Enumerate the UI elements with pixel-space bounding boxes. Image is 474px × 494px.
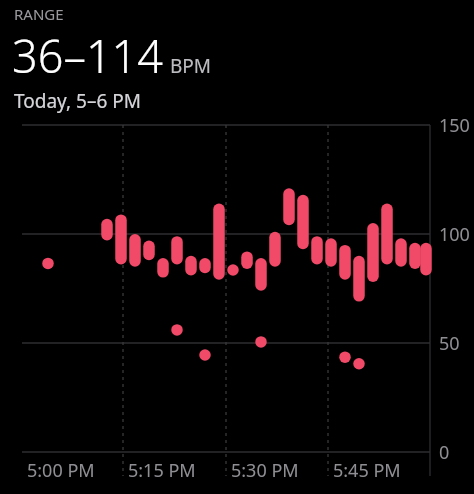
- other: Heart rate range chart, 36 to 114 BPM: [0, 114, 474, 494]
- staticText: BPM: [170, 53, 212, 79]
- staticText: Today, 5–6 PM: [14, 88, 141, 114]
- staticText: RANGE: [14, 4, 64, 24]
- button[interactable]: Heart rate range chart, 36 to 114 BPM: [0, 114, 474, 494]
- staticText: 36–114: [12, 25, 163, 86]
